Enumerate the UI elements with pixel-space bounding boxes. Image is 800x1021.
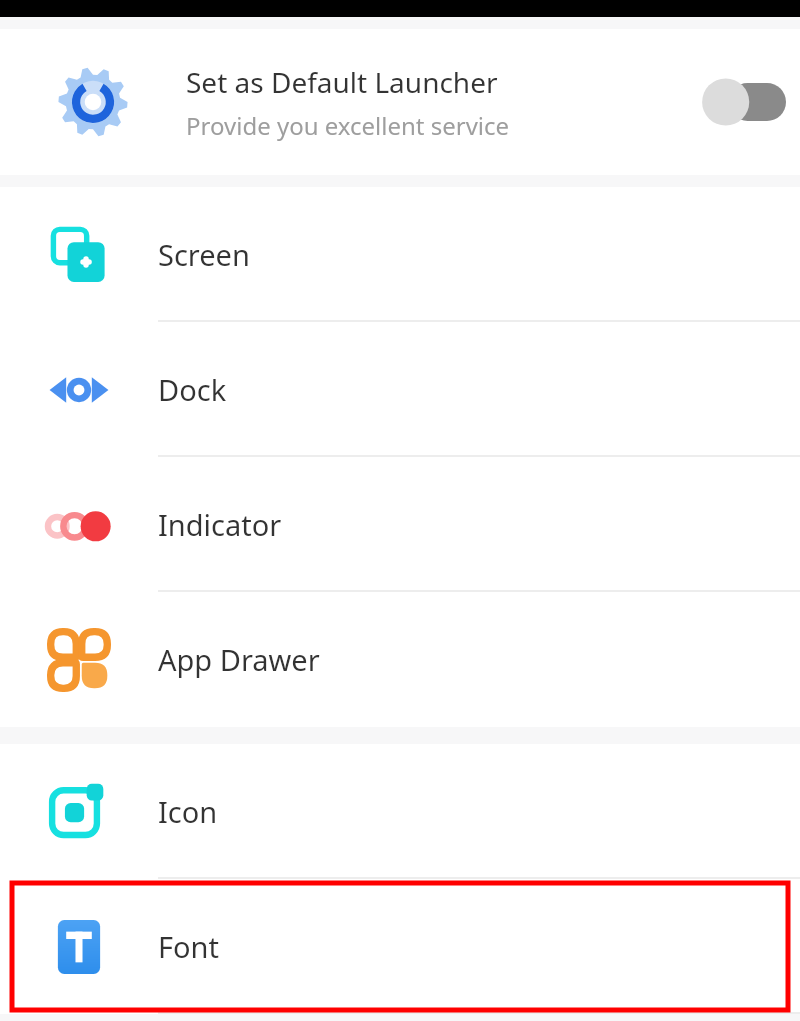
staticText: Font (158, 927, 219, 966)
staticText: Icon (158, 792, 218, 831)
button[interactable]: Indicator (0, 457, 800, 592)
staticText: App Drawer (158, 640, 320, 679)
button[interactable]: Icon (0, 744, 800, 879)
staticText: Set as Default Launcher (186, 63, 498, 101)
button[interactable]: Font (0, 879, 800, 1014)
staticText: Screen (158, 235, 250, 274)
button[interactable]: Set as default launcher toggle (690, 67, 800, 137)
button[interactable]: Set as Default Launcher (0, 29, 800, 175)
staticText: Provide you excellent service (186, 109, 510, 142)
staticText: Dock (158, 370, 227, 409)
button[interactable]: App Drawer (0, 592, 800, 727)
staticText: Indicator (158, 505, 282, 544)
button[interactable]: Screen (0, 187, 800, 322)
button[interactable]: Dock (0, 322, 800, 457)
